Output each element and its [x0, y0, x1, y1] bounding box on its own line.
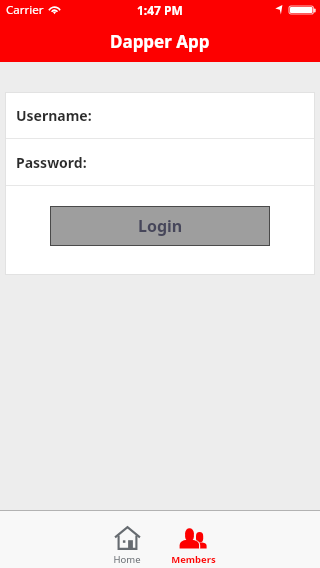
staticText: Username:	[16, 106, 92, 125]
button[interactable]: Members	[160, 511, 226, 568]
button[interactable]: Home	[94, 511, 160, 568]
button[interactable]: Password:	[5, 139, 315, 185]
staticText: Dapper App	[110, 30, 210, 53]
staticText: Members	[171, 553, 216, 566]
button[interactable]: Username:	[5, 92, 315, 138]
staticText: 1:47 PM	[137, 2, 183, 18]
button[interactable]: Login	[50, 206, 270, 246]
staticText: Password:	[16, 153, 87, 172]
staticText: Carrier	[6, 2, 44, 18]
staticText: Home	[113, 553, 141, 566]
staticText: Login	[138, 215, 183, 237]
